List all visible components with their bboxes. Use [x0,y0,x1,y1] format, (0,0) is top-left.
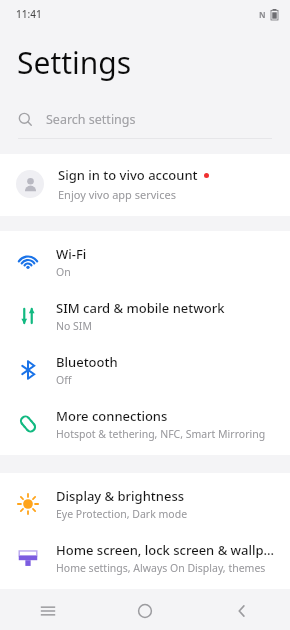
staticText: Hotspot & tethering, NFC, Smart Mirrorin… [56,427,266,441]
staticText: Search settings [46,111,136,128]
staticText: Sign in to vivo account [58,166,198,184]
staticText: On [56,265,71,279]
button[interactable]: Display & brightness [0,477,290,531]
staticText: Wi-Fi [56,245,87,263]
staticText: Settings [17,42,132,83]
staticText: 11:41 [16,7,42,21]
button[interactable]: Search settings [0,100,290,138]
staticText: Home screen, lock screen & wallpaper [56,541,278,559]
staticText: More connections [56,407,168,425]
staticText: N [259,9,266,20]
staticText: Eye Protection, Dark mode [56,507,188,521]
staticText: Off [56,373,72,387]
staticText: Bluetooth [56,353,118,371]
staticText: Display & brightness [56,487,185,505]
staticText: Enjoy vivo app services [58,187,176,202]
button[interactable]: SIM card & mobile network [0,289,290,343]
button[interactable]: Home screen, lock screen & wallpaper [0,531,290,585]
button[interactable]: Recent apps [0,592,96,630]
staticText: Home settings, Always On Display, themes [56,561,266,575]
button[interactable]: Back [193,592,290,630]
button[interactable]: Bluetooth [0,343,290,397]
staticText: No SIM [56,319,92,333]
button[interactable]: Home [96,592,193,630]
button[interactable]: Wi-Fi [0,235,290,289]
button[interactable]: More connections [0,397,290,451]
staticText: SIM card & mobile network [56,299,225,317]
button[interactable]: Sign in to vivo account [0,154,290,216]
